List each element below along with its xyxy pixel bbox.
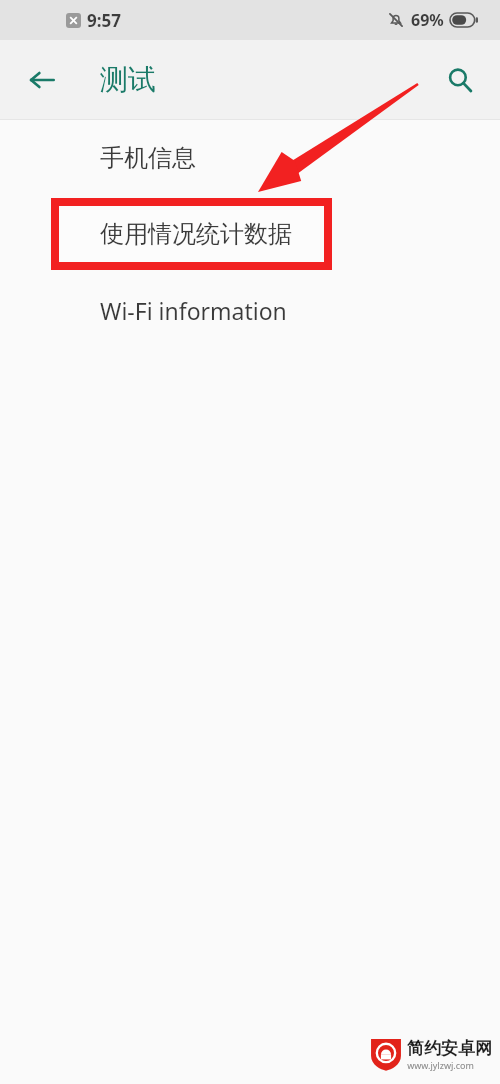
staticText: 测试 [100, 62, 156, 97]
button[interactable]: Back [18, 56, 66, 104]
button[interactable]: 使用情况统计数据 [0, 196, 500, 272]
button[interactable]: Search [436, 56, 484, 104]
staticText: 9:57 [87, 9, 121, 32]
staticText: 手机信息 [100, 143, 196, 173]
staticText: www.jylzwj.com [407, 1059, 474, 1071]
staticText: 简约安卓网 [407, 1038, 492, 1059]
button[interactable]: 手机信息 [0, 120, 500, 196]
staticText: 使用情况统计数据 [100, 219, 292, 249]
staticText: 69% [411, 9, 444, 31]
button[interactable]: Wi-Fi information [0, 272, 500, 348]
staticText: Wi-Fi information [100, 295, 287, 326]
